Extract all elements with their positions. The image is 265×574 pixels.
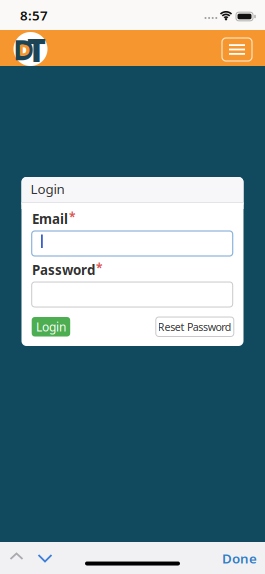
button[interactable]: Login	[32, 317, 70, 336]
staticText: T	[27, 28, 46, 71]
staticText: Done	[222, 549, 257, 567]
staticText: Login	[30, 180, 64, 198]
button[interactable]: Password	[32, 282, 233, 307]
button[interactable]: Menu	[222, 38, 252, 61]
staticText: *	[69, 209, 76, 225]
button[interactable]: Email	[32, 231, 233, 256]
staticText: Login	[36, 319, 66, 335]
staticText: D	[18, 39, 30, 60]
staticText: 8:57	[20, 6, 48, 24]
staticText: Password	[32, 261, 95, 279]
button[interactable]: Reset Password	[156, 317, 234, 336]
staticText: *	[96, 260, 103, 276]
staticText: Reset Password	[158, 320, 232, 334]
button[interactable]: Previous field	[9, 552, 23, 560]
staticText: Email	[32, 210, 68, 228]
button[interactable]: Done	[222, 549, 257, 567]
button[interactable]: Next field	[37, 554, 52, 563]
staticText: D	[13, 31, 34, 68]
